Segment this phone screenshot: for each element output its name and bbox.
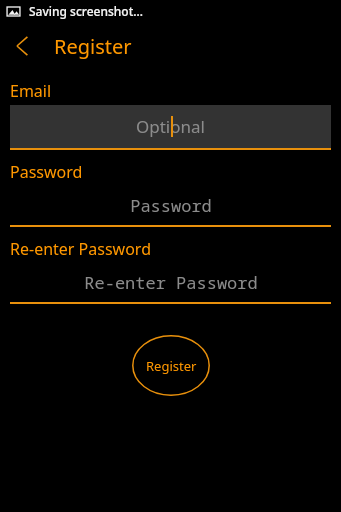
staticText: Email <box>10 80 52 102</box>
button[interactable]: Optional <box>10 105 331 148</box>
button[interactable]: Back <box>0 30 44 62</box>
staticText: Saving screenshot… <box>29 3 143 19</box>
staticText: Password <box>130 194 212 217</box>
button[interactable]: Register <box>132 335 210 396</box>
staticText: Password <box>10 161 83 183</box>
staticText: Optional <box>136 115 205 138</box>
button[interactable]: Re-enter Password <box>10 262 331 302</box>
staticText: Register <box>54 33 132 60</box>
button[interactable]: Password <box>10 185 331 225</box>
staticText: Re-enter Password <box>84 271 258 294</box>
staticText: Re-enter Password <box>10 238 151 260</box>
staticText: Register <box>146 357 197 375</box>
